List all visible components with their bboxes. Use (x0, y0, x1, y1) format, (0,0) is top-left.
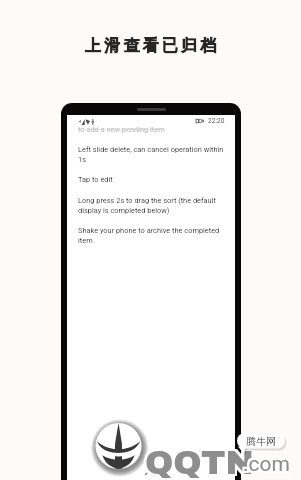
staticText: QQTN (145, 446, 254, 480)
button[interactable]: Long press 2s to drag the sort (the defa… (67, 190, 235, 220)
staticText: .com (243, 452, 290, 477)
staticText: Shake your phone to archive the complete… (78, 226, 226, 244)
staticText: .com (241, 450, 288, 475)
staticText: 腾牛网 (246, 435, 276, 448)
button[interactable]: Click the button in the lower right corn… (67, 109, 235, 139)
staticText: QQTN (145, 444, 254, 480)
staticText: QQTN (145, 442, 254, 479)
staticText: QQTN (147, 444, 256, 480)
button[interactable]: Tap to edit (67, 169, 235, 190)
button[interactable]: Shake your phone to archive the complete… (67, 220, 235, 250)
staticText: 上滑查看已归档 (85, 36, 220, 56)
staticText: QQTN (143, 444, 252, 480)
staticText: Long press 2s to drag the sort (the defa… (78, 196, 226, 214)
staticText: .com (245, 450, 292, 475)
staticText: 22:20 (208, 117, 225, 125)
button[interactable]: Left slide delete, can cancel operation … (67, 139, 235, 169)
staticText: Left slide delete, can cancel operation … (78, 145, 226, 163)
staticText: .com (241, 452, 288, 477)
staticText: QQTN (143, 442, 252, 479)
staticText: .com (241, 454, 288, 479)
staticText: .com (243, 454, 290, 479)
staticText: Tap to edit (78, 175, 113, 184)
staticText: .com (243, 450, 290, 475)
staticText: QQTN (147, 446, 256, 480)
staticText: Click the button in the lower right corn… (78, 115, 209, 133)
staticText: .com (245, 452, 292, 477)
staticText: QQTN (143, 446, 252, 480)
staticText: .com (245, 454, 292, 479)
staticText: QQTN (147, 442, 256, 479)
